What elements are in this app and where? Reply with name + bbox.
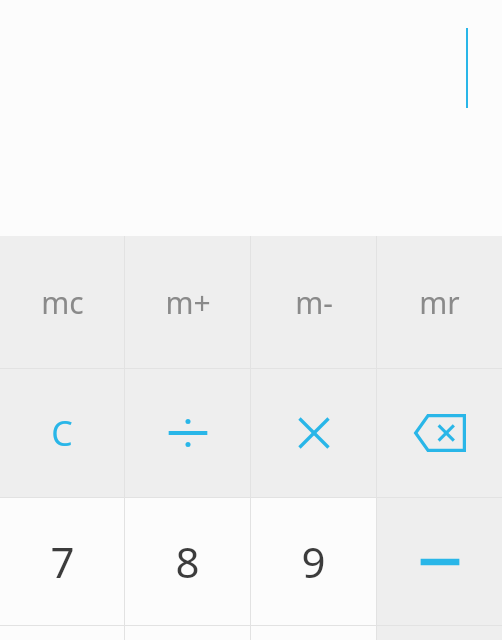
button[interactable]: 9 xyxy=(251,498,376,625)
staticText: mc xyxy=(41,282,84,323)
button[interactable]: 8 xyxy=(125,498,250,625)
button[interactable]: mc xyxy=(0,236,124,368)
button[interactable]: Divide xyxy=(125,369,250,497)
staticText: 9 xyxy=(301,533,326,590)
button[interactable]: Minus xyxy=(377,498,502,625)
button[interactable]: Backspace xyxy=(377,369,502,497)
button[interactable]: Multiply xyxy=(251,369,376,497)
button[interactable]: m+ xyxy=(125,236,250,368)
button[interactable]: mr xyxy=(377,236,502,368)
staticText: mr xyxy=(419,282,460,323)
button[interactable]: C xyxy=(0,369,124,497)
staticText: m- xyxy=(295,282,333,323)
button[interactable]: 7 xyxy=(0,498,124,625)
staticText: 7 xyxy=(50,533,75,590)
staticText: 8 xyxy=(175,533,200,590)
button[interactable]: m- xyxy=(251,236,376,368)
staticText: m+ xyxy=(165,282,211,323)
staticText: C xyxy=(51,410,73,456)
